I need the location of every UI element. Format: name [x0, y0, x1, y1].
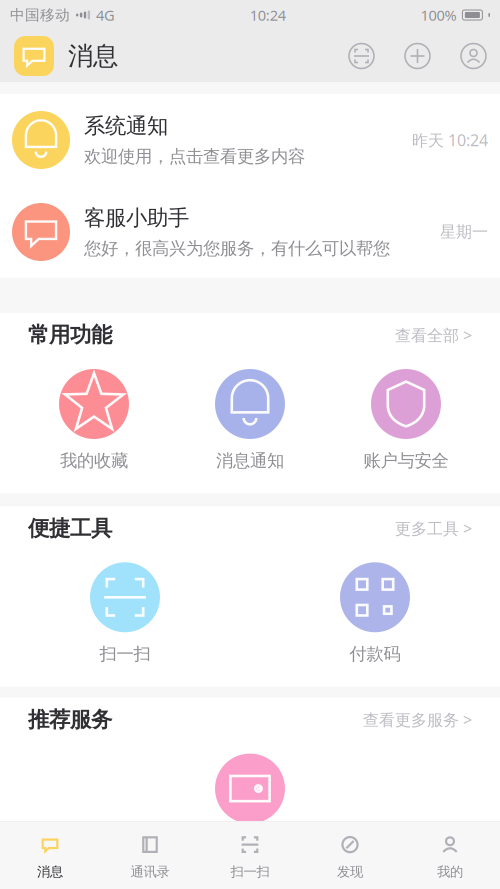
staticText: 生活缴费: [216, 835, 284, 856]
button[interactable]: 客服小助手: [0, 186, 500, 278]
staticText: 星期一: [440, 222, 488, 242]
button[interactable]: 消息: [0, 822, 100, 889]
staticText: 便捷工具: [28, 515, 112, 541]
button[interactable]: 我的收藏: [16, 369, 172, 471]
staticText: 查看全部 >: [395, 324, 472, 346]
button[interactable]: App: [14, 36, 54, 76]
button[interactable]: Add: [405, 43, 430, 68]
button[interactable]: 更多工具 >: [395, 518, 472, 539]
button[interactable]: 账户与安全: [328, 369, 484, 471]
staticText: 我的: [437, 864, 463, 880]
staticText: 扫一扫: [99, 643, 150, 665]
staticText: 更多工具 >: [395, 518, 472, 539]
staticText: 4G: [96, 5, 115, 25]
button[interactable]: 通讯录: [100, 822, 200, 889]
staticText: 消息: [37, 864, 63, 880]
button[interactable]: 生活缴费: [0, 754, 500, 856]
staticText: 我的收藏: [60, 450, 128, 471]
staticText: 账户与安全: [363, 450, 448, 471]
button[interactable]: Profile: [461, 43, 486, 68]
staticText: 付款码: [349, 643, 400, 665]
staticText: 欢迎使用，点击查看更多内容: [84, 146, 305, 167]
button[interactable]: 查看更多服务 >: [363, 709, 472, 730]
staticText: 推荐服务: [28, 706, 112, 733]
button[interactable]: 查看全部 >: [395, 324, 472, 346]
staticText: 消息: [68, 40, 118, 71]
staticText: 消息通知: [216, 450, 284, 471]
staticText: 客服小助手: [84, 205, 189, 231]
staticText: 常用功能: [28, 322, 112, 348]
button[interactable]: 消息通知: [172, 369, 328, 471]
staticText: 查看更多服务 >: [363, 709, 472, 730]
button[interactable]: 扫一扫: [0, 562, 250, 665]
staticText: 通讯录: [130, 864, 169, 880]
staticText: 扫一扫: [230, 864, 269, 880]
button[interactable]: 扫一扫: [200, 822, 300, 889]
button[interactable]: 付款码: [250, 562, 500, 665]
button[interactable]: 系统通知: [0, 94, 500, 186]
staticText: 10:24: [250, 5, 286, 25]
staticText: 100%: [420, 5, 456, 25]
staticText: 发现: [337, 864, 363, 880]
staticText: 昨天 10:24: [412, 129, 488, 151]
staticText: 系统通知: [84, 113, 168, 139]
staticText: 中国移动: [10, 6, 70, 24]
button[interactable]: Scan: [349, 43, 374, 68]
button[interactable]: 我的: [400, 822, 500, 889]
staticText: 您好，很高兴为您服务，有什么可以帮您: [84, 238, 390, 259]
button[interactable]: 发现: [300, 822, 400, 889]
